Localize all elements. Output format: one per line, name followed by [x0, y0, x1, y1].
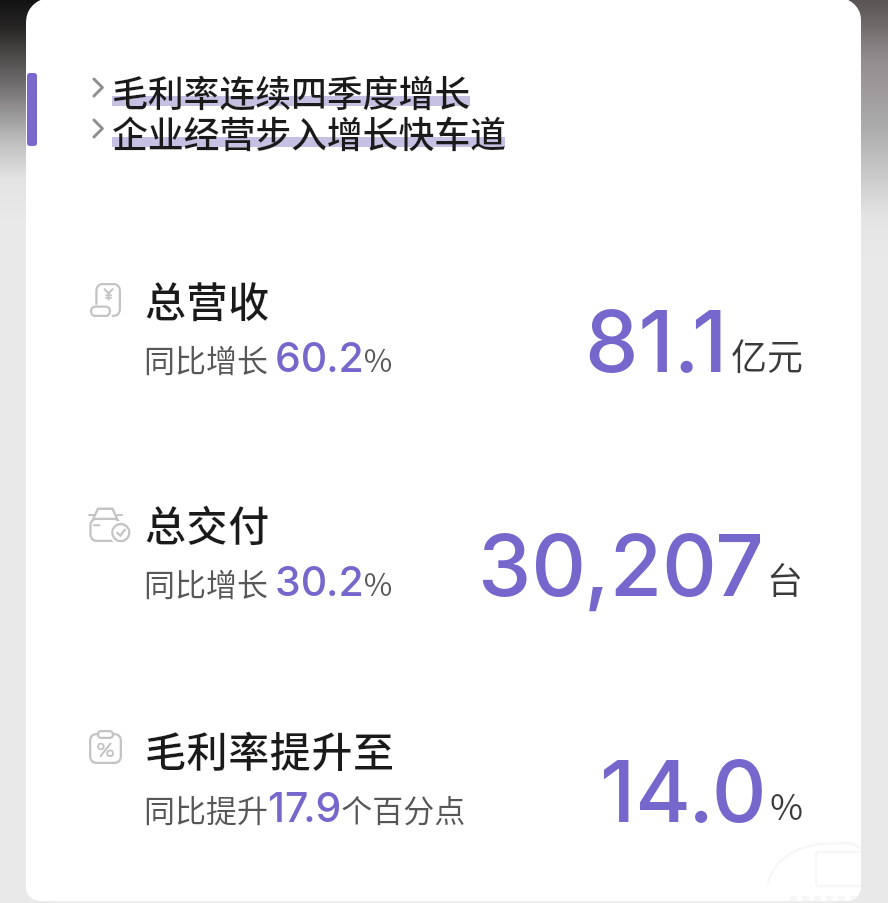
staticText: 同比增长 30.2% — [144, 556, 393, 606]
staticText: 同比提升17.9个百分点 — [144, 782, 466, 832]
button[interactable]: 总交付 — [26, 493, 861, 623]
staticText: 总营收 — [145, 269, 270, 328]
staticText: 14.0 — [600, 740, 767, 843]
other: 总营收 — [90, 283, 121, 317]
other: 总交付 — [88, 507, 129, 542]
staticText: 毛利率连续四季度增长 — [112, 65, 471, 111]
staticText: 总交付 — [145, 493, 270, 552]
button[interactable]: 毛利率提升至 — [26, 719, 861, 849]
button[interactable]: 企业经营步入增长快车道 — [86, 106, 480, 152]
button[interactable]: 毛利率连续四季度增长 — [86, 65, 445, 111]
staticText: 台 — [767, 552, 804, 604]
staticText: 30,207 — [478, 514, 764, 617]
other: 毛利率提升至 — [89, 730, 122, 764]
staticText: 同比增长 60.2% — [144, 332, 393, 382]
staticText: 亿元 — [731, 328, 804, 380]
staticText: % — [770, 778, 804, 830]
staticText: 81.1 — [585, 290, 728, 393]
staticText: 企业经营步入增长快车道 — [112, 106, 506, 152]
button[interactable]: 总营收 — [26, 269, 861, 399]
staticText: 毛利率提升至 — [145, 719, 395, 778]
